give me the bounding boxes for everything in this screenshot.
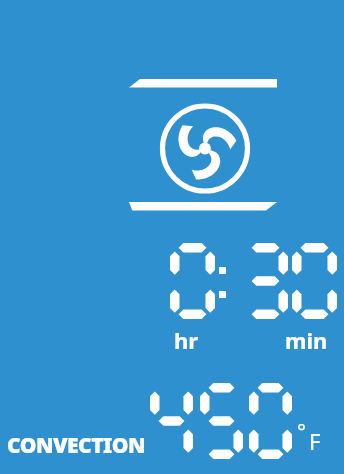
button[interactable]: Convection bake, 0:30, 450 degrees F: [0, 0, 344, 474]
